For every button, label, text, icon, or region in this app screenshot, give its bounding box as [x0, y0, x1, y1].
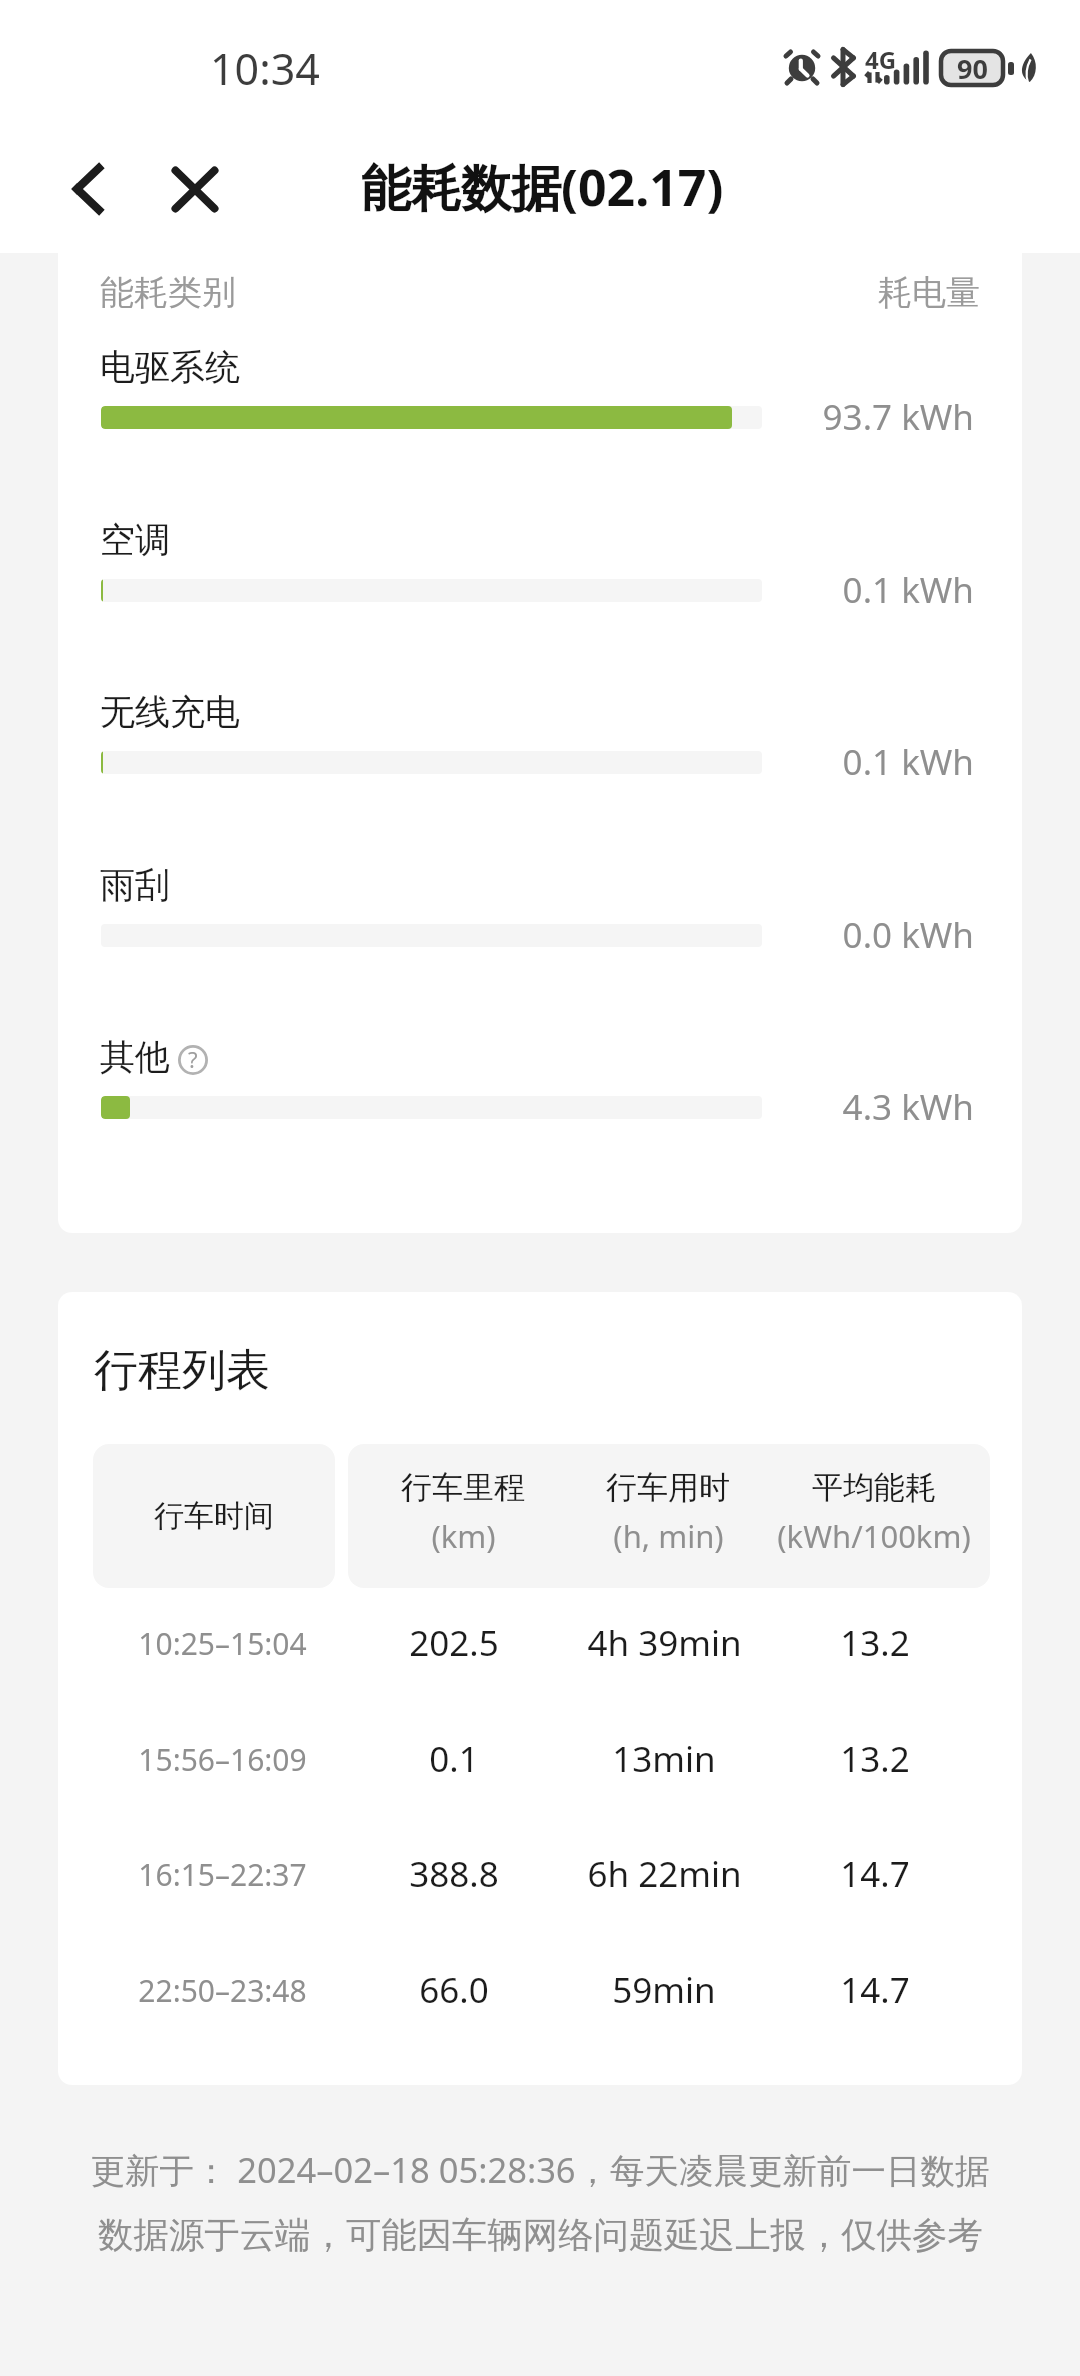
staticText: 15:56–16:09 [138, 1739, 307, 1780]
staticText: 388.8 [409, 1850, 499, 1898]
staticText: 93.7 kWh [58, 393, 974, 441]
staticText: 4G [865, 43, 897, 76]
staticText: 其他 [100, 1035, 170, 1079]
button[interactable]: 22:50–23:48 [93, 1933, 990, 2047]
staticText: 202.5 [409, 1619, 499, 1667]
staticText: 13.2 [840, 1619, 910, 1667]
button[interactable]: 15:56–16:09 [93, 1702, 990, 1816]
button[interactable]: What is this [178, 1045, 208, 1075]
staticText: 90 [957, 50, 988, 84]
staticText: 6h 22min [587, 1850, 742, 1898]
staticText: 13.2 [840, 1735, 910, 1783]
staticText: 能耗数据(02.17) [361, 153, 724, 221]
staticText: 0.0 kWh [58, 911, 974, 959]
staticText: 0.1 kWh [58, 738, 974, 786]
staticText: ? [188, 1044, 198, 1074]
staticText: 14.7 [840, 1850, 910, 1898]
staticText: 能耗类别 [100, 271, 236, 314]
staticText: 4.3 kWh [58, 1083, 974, 1131]
staticText: 数据源于云端，可能因车辆网络问题延迟上报，仅供参考 [98, 2213, 983, 2258]
staticText: 空调 [100, 518, 170, 562]
staticText: 行车用时 [606, 1468, 730, 1507]
staticText: (h, min) [613, 1515, 724, 1557]
staticText: 0.1 [429, 1735, 479, 1783]
staticText: 13min [612, 1735, 716, 1783]
button[interactable]: Close [150, 147, 240, 231]
staticText: 行车里程 [401, 1468, 525, 1507]
staticText: (kWh/100km) [777, 1515, 971, 1557]
staticText: 无线充电 [100, 690, 240, 734]
staticText: 平均能耗 [812, 1468, 936, 1507]
staticText: 电驱系统 [100, 345, 240, 389]
staticText: (km) [431, 1515, 496, 1557]
staticText: 更新于： 2024–02–18 05:28:36，每天凌晨更新前一日数据 [90, 2146, 990, 2193]
staticText: 耗电量 [58, 271, 980, 314]
staticText: 0.1 kWh [58, 566, 974, 614]
staticText: 16:15–22:37 [138, 1854, 307, 1895]
staticText: 雨刮 [100, 863, 170, 907]
button[interactable]: 10:25–15:04 [93, 1586, 990, 1700]
staticText: 行程列表 [94, 1343, 270, 1398]
staticText: 行车时间 [154, 1497, 274, 1535]
staticText: 14.7 [840, 1966, 910, 2014]
staticText: 22:50–23:48 [138, 1970, 307, 2011]
staticText: 10:25–15:04 [138, 1623, 307, 1664]
staticText: 4h 39min [587, 1619, 742, 1667]
button[interactable]: 16:15–22:37 [93, 1817, 990, 1931]
staticText: 59min [612, 1966, 716, 2014]
staticText: 10:34 [210, 39, 320, 98]
button[interactable]: Back [43, 147, 133, 231]
staticText: 66.0 [419, 1966, 489, 2014]
